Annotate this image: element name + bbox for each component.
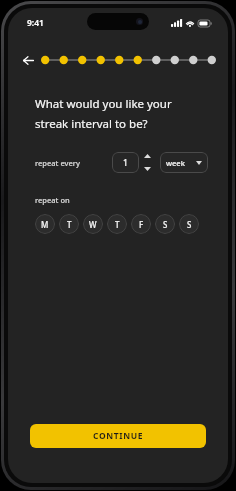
staticText: week — [166, 158, 185, 168]
button[interactable]: 1 — [112, 152, 139, 173]
button[interactable]: T — [59, 214, 79, 234]
staticText: M — [41, 219, 49, 230]
button[interactable]: CONTINUE — [30, 424, 206, 448]
button[interactable]: Decrease — [143, 165, 152, 173]
button[interactable]: week — [160, 152, 208, 173]
button[interactable]: S — [155, 214, 175, 234]
button[interactable]: Back — [19, 51, 37, 69]
staticText: 1 — [123, 157, 128, 169]
button[interactable]: W — [83, 214, 103, 234]
button[interactable]: Increase — [143, 152, 152, 160]
staticText: S — [163, 219, 168, 230]
button[interactable]: F — [131, 214, 151, 234]
staticText: T — [67, 219, 72, 230]
staticText: W — [89, 219, 97, 230]
staticText: What would you like your — [35, 96, 172, 112]
staticText: T — [115, 219, 120, 230]
staticText: S — [187, 219, 192, 230]
button[interactable]: S — [179, 214, 199, 234]
staticText: F — [139, 219, 144, 230]
staticText: streak interval to be? — [35, 116, 148, 132]
staticText: repeat on — [35, 195, 70, 205]
staticText: 9:41 — [27, 17, 44, 29]
button[interactable]: M — [35, 214, 55, 234]
staticText: repeat every — [35, 158, 80, 168]
button[interactable]: T — [107, 214, 127, 234]
staticText: CONTINUE — [93, 430, 144, 442]
